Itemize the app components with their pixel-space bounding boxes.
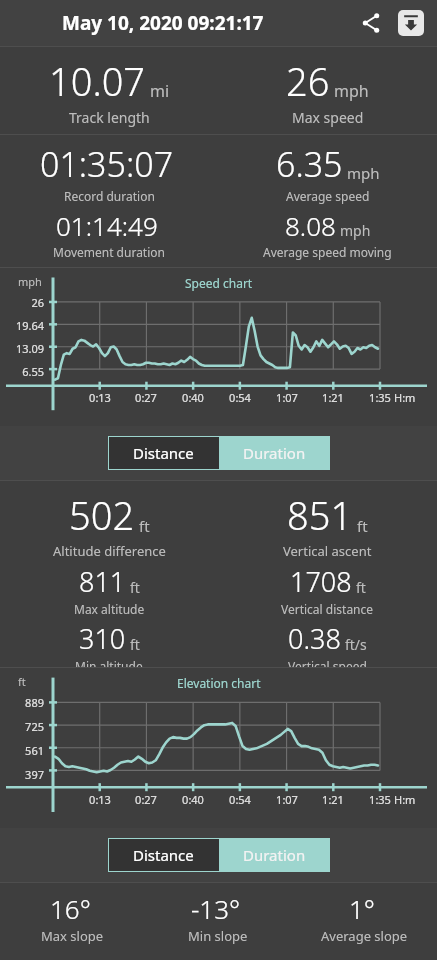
staticText: 811 xyxy=(79,563,126,600)
staticText: mph xyxy=(18,274,42,289)
staticText: Duration xyxy=(243,845,306,865)
staticText: 0:13 xyxy=(84,390,116,405)
staticText: 1:07 xyxy=(271,390,303,405)
staticText: 16° xyxy=(50,891,91,926)
button[interactable]: Distance xyxy=(108,838,219,872)
staticText: Min altitude xyxy=(75,658,143,667)
staticText: 1:35 xyxy=(364,390,396,405)
staticText: 889 xyxy=(25,695,44,710)
staticText: 8.08 xyxy=(285,208,336,243)
staticText: Average slope xyxy=(321,927,408,945)
staticText: May 10, 2020 09:21:17 xyxy=(62,10,264,36)
staticText: mph xyxy=(347,163,380,183)
staticText: 26 xyxy=(286,55,330,107)
staticText: Track length xyxy=(69,108,150,127)
button[interactable]: Duration xyxy=(219,436,330,470)
staticText: 561 xyxy=(25,743,44,758)
staticText: 1:35 xyxy=(364,792,396,807)
staticText: 851 xyxy=(287,489,353,541)
staticText: Average speed moving xyxy=(263,244,392,260)
staticText: ft xyxy=(130,635,140,654)
staticText: 13.09 xyxy=(15,341,44,356)
staticText: mph xyxy=(340,221,371,240)
staticText: Record duration xyxy=(64,188,155,204)
staticText: Distance xyxy=(133,443,194,463)
staticText: Average speed xyxy=(286,188,370,204)
staticText: 397 xyxy=(25,767,44,782)
staticText: 0:40 xyxy=(177,390,209,405)
staticText: ft xyxy=(139,516,150,536)
staticText: 0.38 xyxy=(288,620,341,657)
staticText: ft xyxy=(356,578,366,597)
staticText: Duration xyxy=(243,443,306,463)
staticText: ft xyxy=(18,674,26,689)
button[interactable]: Save xyxy=(391,3,431,43)
staticText: 0:54 xyxy=(224,390,256,405)
staticText: 1:07 xyxy=(271,792,303,807)
staticText: 725 xyxy=(25,719,44,734)
staticText: 6.55 xyxy=(22,364,44,379)
staticText: 26 xyxy=(31,295,44,310)
staticText: Max slope xyxy=(41,927,104,945)
staticText: 1:21 xyxy=(317,390,349,405)
staticText: Elevation chart xyxy=(177,675,261,691)
staticText: Movement duration xyxy=(53,244,165,260)
staticText: Altitude difference xyxy=(53,542,166,560)
staticText: ft xyxy=(357,516,368,536)
staticText: H:m xyxy=(394,390,416,405)
staticText: 1° xyxy=(349,891,375,926)
staticText: -13° xyxy=(191,891,241,926)
staticText: 502 xyxy=(69,489,135,541)
staticText: Max speed xyxy=(292,108,364,127)
staticText: 01:14:49 xyxy=(56,208,158,243)
staticText: 0:27 xyxy=(130,792,162,807)
staticText: mph xyxy=(334,80,369,102)
staticText: 6.35 xyxy=(276,141,343,187)
button[interactable]: Share xyxy=(351,3,391,43)
staticText: 310 xyxy=(79,620,126,657)
staticText: 19.64 xyxy=(15,318,44,333)
staticText: 0:40 xyxy=(177,792,209,807)
button[interactable]: Distance xyxy=(108,436,219,470)
staticText: Vertical ascent xyxy=(283,542,372,560)
staticText: 0:27 xyxy=(130,390,162,405)
staticText: 10.07 xyxy=(49,55,146,107)
staticText: mi xyxy=(150,80,170,102)
staticText: 1708 xyxy=(290,563,352,600)
staticText: Max altitude xyxy=(74,601,145,617)
button[interactable]: Duration xyxy=(219,838,330,872)
staticText: ft/s xyxy=(345,635,367,654)
staticText: H:m xyxy=(394,792,416,807)
staticText: ft xyxy=(130,578,140,597)
staticText: Vertical speed xyxy=(288,658,367,667)
staticText: Min slope xyxy=(188,927,248,945)
staticText: Speed chart xyxy=(185,275,253,291)
staticText: Vertical distance xyxy=(281,601,374,617)
staticText: 0:13 xyxy=(84,792,116,807)
staticText: Distance xyxy=(133,845,194,865)
staticText: 01:35:07 xyxy=(40,141,174,187)
staticText: 1:21 xyxy=(317,792,349,807)
staticText: 0:54 xyxy=(224,792,256,807)
